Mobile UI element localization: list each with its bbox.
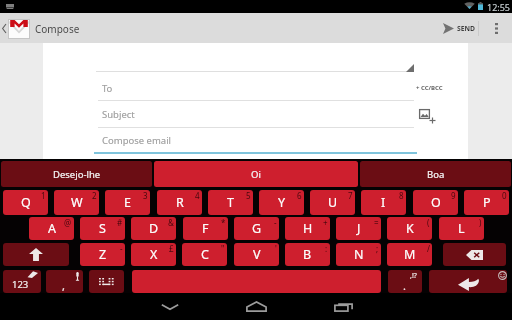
button[interactable]: P [464,190,509,215]
staticText: D [149,220,159,237]
staticText: 5 [246,190,251,201]
staticText: F [202,220,209,237]
staticText: I [381,194,386,211]
staticText: R [176,194,184,211]
staticText: 1 [41,190,46,201]
button[interactable]: Period [388,270,422,293]
staticText: / [427,243,430,254]
staticText: . [403,278,406,293]
button[interactable]: O [413,190,458,215]
button[interactable]: J [336,217,381,240]
button[interactable]: G [234,217,279,240]
staticText: B [303,246,312,263]
button[interactable]: L [439,217,484,240]
button[interactable]: Boa [360,161,511,187]
staticText: & [168,217,174,228]
staticText: Compose [35,22,80,36]
button[interactable]: D [131,217,176,240]
button[interactable]: W [54,190,99,215]
staticText: ( [427,217,430,228]
staticText: 12:55 [487,1,511,13]
staticText: 4 [195,190,200,201]
button[interactable]: B [285,243,330,266]
staticText: + CC/BCC [416,84,443,92]
button[interactable]: Space [132,270,381,293]
staticText: H [303,220,313,237]
button[interactable]: Comma and voice input [46,270,83,293]
button[interactable]: + CC/BCC [416,82,448,94]
button[interactable]: Home [241,293,271,320]
button[interactable]: C [182,243,227,266]
button[interactable]: N [336,243,381,266]
staticText: Y [278,194,286,211]
staticText: Q [21,194,31,211]
staticText: 6 [297,190,302,201]
button[interactable]: H [285,217,330,240]
button[interactable]: Y [259,190,304,215]
staticText: £ [169,243,174,254]
button[interactable]: Switch keyboard [89,270,124,293]
button[interactable]: U [310,190,355,215]
button[interactable]: Back [155,293,185,320]
staticText: S [99,220,106,237]
button[interactable]: V [234,243,279,266]
button[interactable]: Compose email [102,134,172,147]
button[interactable]: SEND [436,13,478,43]
button[interactable]: Backspace [443,243,506,266]
button[interactable]: K [387,217,432,240]
staticText: V [253,246,261,263]
button[interactable]: X [131,243,176,266]
staticText: T [227,194,234,211]
staticText: 3 [143,190,148,201]
staticText: 0 [502,190,507,201]
staticText: ,!? [410,271,417,281]
button[interactable]: A [29,217,74,240]
staticText: ) [479,217,482,228]
staticText: @ [64,217,72,228]
staticText: O [431,194,441,211]
staticText: C [201,246,209,263]
button[interactable]: Z [80,243,125,266]
button[interactable]: I [361,190,406,215]
button[interactable]: To [102,82,113,95]
staticText: X [150,246,158,263]
button[interactable]: Symbols [3,270,41,293]
staticText: G [252,220,262,237]
staticText: E [124,194,131,211]
button[interactable]: T [208,190,253,215]
staticText: M [404,246,416,263]
button[interactable]: Desejo-lhe [1,161,152,187]
staticText: 8 [399,190,404,201]
button[interactable]: Recent apps [328,293,358,320]
button[interactable]: E [105,190,150,215]
button[interactable]: M [387,243,432,266]
button[interactable]: Attach image [417,106,437,126]
button[interactable]: Enter [429,270,507,293]
staticText: + [323,217,328,228]
button[interactable]: R [157,190,202,215]
button[interactable]: Subject [102,108,135,121]
staticText: Boa [427,168,445,181]
button[interactable]: F [183,217,228,240]
staticText: K [406,220,414,237]
button[interactable]: S [80,217,125,240]
staticText: # [117,217,123,228]
staticText: 7 [348,190,353,201]
staticText: * [221,217,226,228]
staticText: SEND [457,24,476,33]
button[interactable]: Q [3,190,48,215]
staticText: ' [275,243,277,254]
staticText: - [274,217,277,228]
staticText: " [221,243,225,254]
button[interactable]: Navigate up [0,13,8,43]
staticText: = [374,217,379,228]
staticText: P [483,194,491,211]
staticText: U [328,194,338,211]
button[interactable]: Shift [3,243,69,266]
staticText: 2 [92,190,97,201]
staticText: Oi [251,168,261,181]
staticText: - [120,243,123,254]
button[interactable]: Oi [154,161,358,187]
button[interactable]: More options [485,13,507,43]
staticText: 9 [451,190,456,201]
